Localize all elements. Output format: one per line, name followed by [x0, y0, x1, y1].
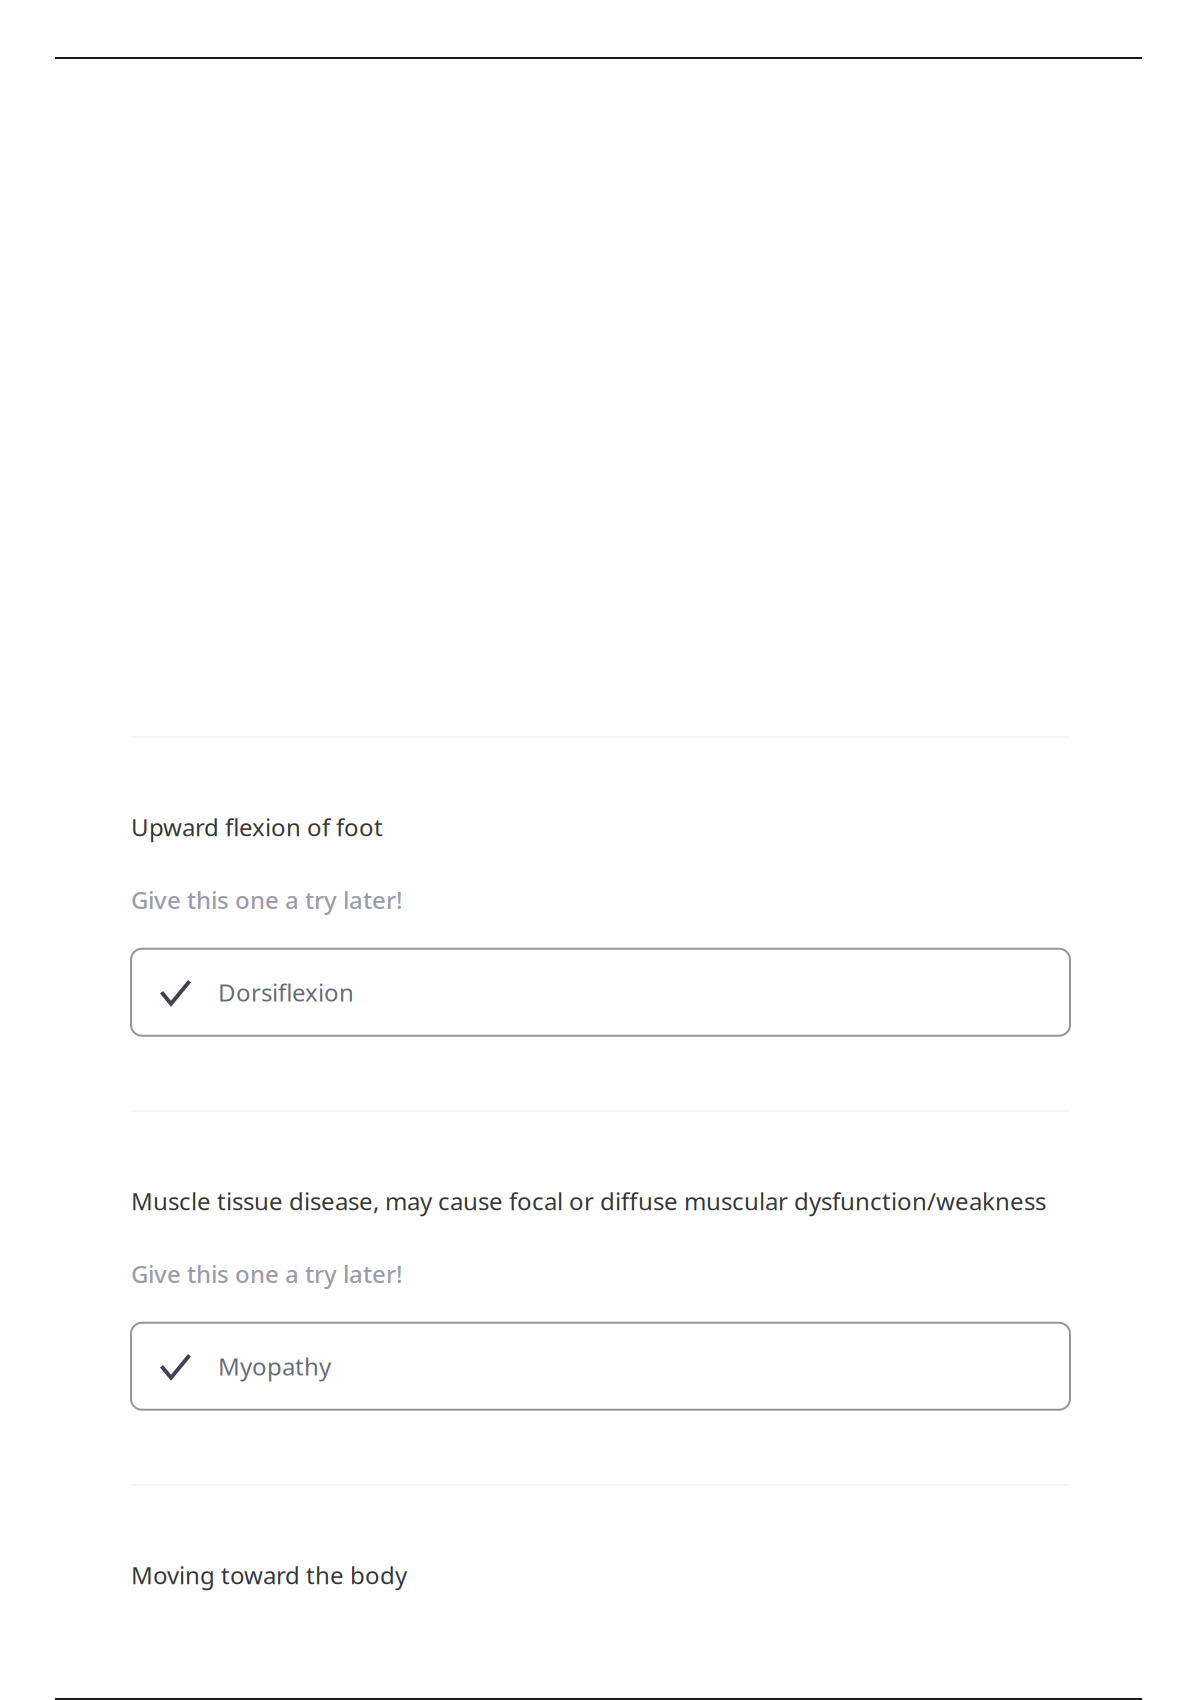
- staticText: Give this one a try later!: [131, 884, 403, 916]
- staticText: Myopathy: [218, 1350, 331, 1382]
- staticText: Upward flexion of foot: [131, 811, 383, 843]
- staticText: Muscle tissue disease, may cause focal o…: [131, 1185, 1046, 1217]
- staticText: Give this one a try later!: [131, 1258, 403, 1290]
- staticText: Moving toward the body: [131, 1559, 407, 1591]
- staticText: Dorsiflexion: [218, 976, 354, 1008]
- button[interactable]: Dorsiflexion: [131, 949, 1070, 1036]
- button[interactable]: Myopathy: [131, 1323, 1070, 1410]
